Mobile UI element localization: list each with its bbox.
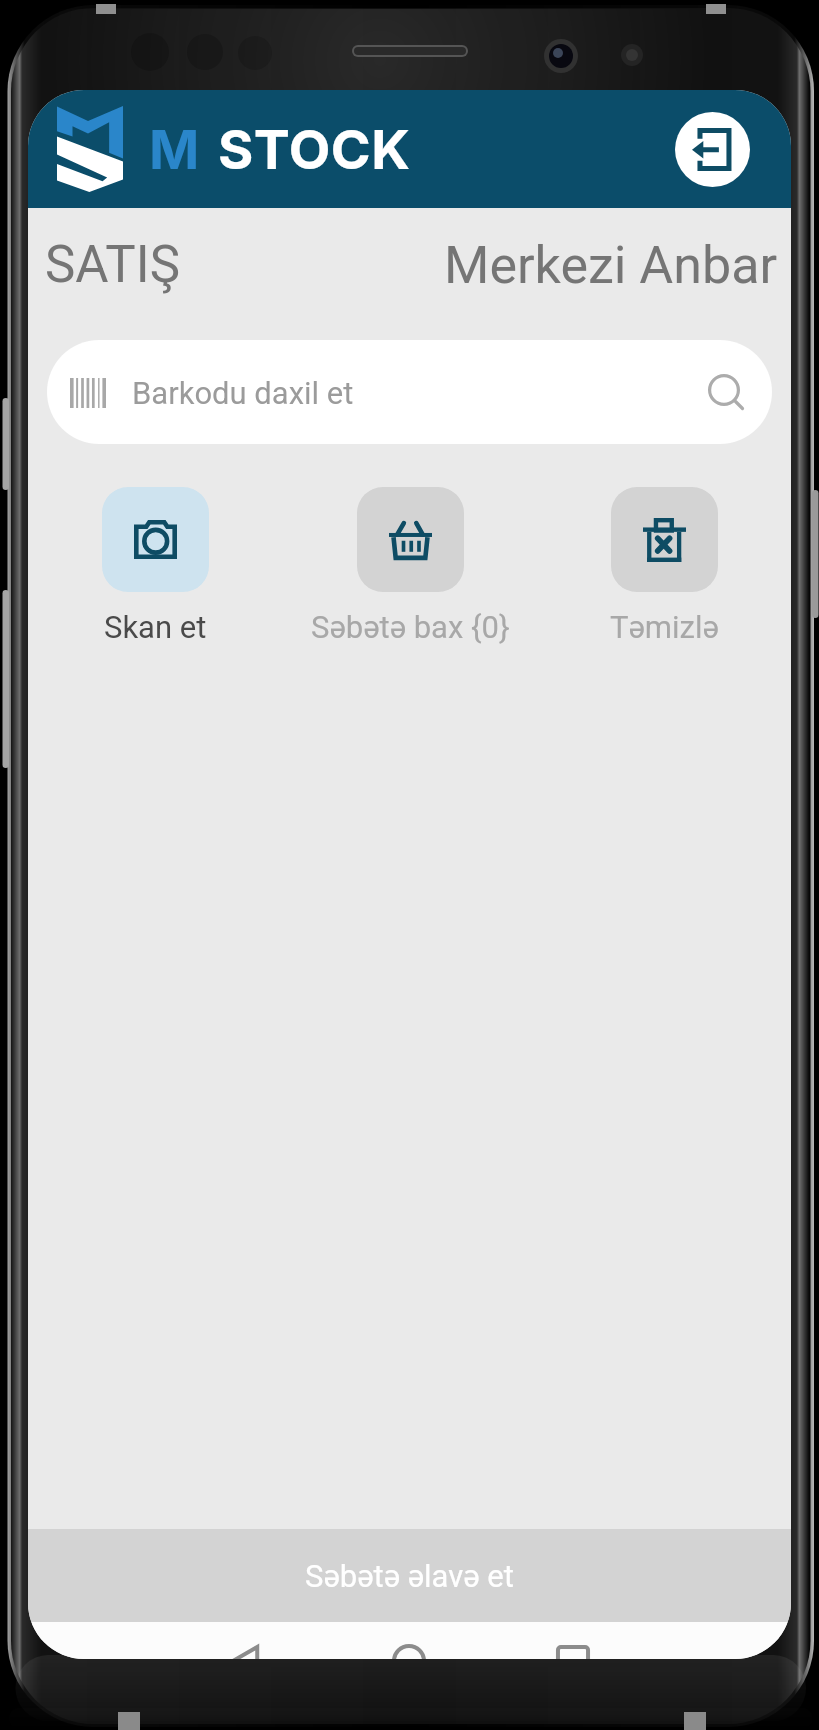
staticText: Təmizlə bbox=[610, 609, 719, 645]
button[interactable]: Səbətə bax {0} bbox=[311, 487, 510, 645]
button[interactable]: Barkodu daxil et bbox=[47, 340, 772, 444]
staticText: M bbox=[149, 117, 200, 182]
staticText: Merkezi Anbar bbox=[444, 235, 778, 296]
button[interactable]: Back bbox=[231, 1645, 263, 1659]
staticText: Səbətə bax {0} bbox=[311, 609, 510, 645]
staticText: STOCK bbox=[218, 117, 411, 182]
staticText: Skan et bbox=[104, 609, 207, 645]
button[interactable]: Skan et bbox=[102, 487, 209, 645]
staticText: Barkodu daxil et bbox=[132, 375, 354, 411]
button[interactable]: Logout bbox=[675, 112, 750, 187]
button[interactable]: Səbətə əlavə et bbox=[28, 1529, 791, 1622]
button[interactable]: Recents bbox=[557, 1646, 589, 1659]
button[interactable]: Home bbox=[393, 1645, 425, 1659]
button[interactable]: Təmizlə bbox=[610, 487, 719, 645]
staticText: SATIŞ bbox=[45, 235, 180, 295]
staticText: Səbətə əlavə et bbox=[305, 1558, 514, 1594]
